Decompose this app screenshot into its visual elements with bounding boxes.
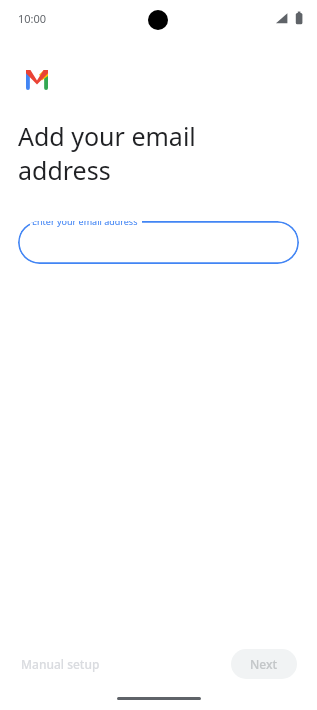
staticText: Enter your email address (32, 221, 138, 227)
staticText: Manual setup (21, 656, 100, 672)
button[interactable]: Manual setup (10, 649, 111, 679)
staticText: 10:00 (18, 11, 47, 26)
staticText: Next (250, 656, 278, 672)
button[interactable]: Enter your email address (18, 221, 299, 264)
staticText: address (18, 153, 111, 187)
staticText: Add your email (18, 119, 196, 153)
button[interactable]: Next (231, 649, 297, 679)
